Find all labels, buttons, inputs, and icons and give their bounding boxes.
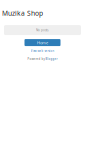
staticText: View web version: [30, 49, 54, 53]
staticText: No posts.: [36, 28, 49, 32]
staticText: Blogger: [46, 57, 58, 61]
button[interactable]: Home: [24, 39, 60, 46]
staticText: Muzika Shop: [2, 9, 43, 18]
staticText: Home: [37, 40, 48, 45]
button[interactable]: Blogger: [46, 57, 58, 61]
button[interactable]: View web version: [0, 49, 85, 53]
staticText: Powered by: [27, 57, 44, 61]
